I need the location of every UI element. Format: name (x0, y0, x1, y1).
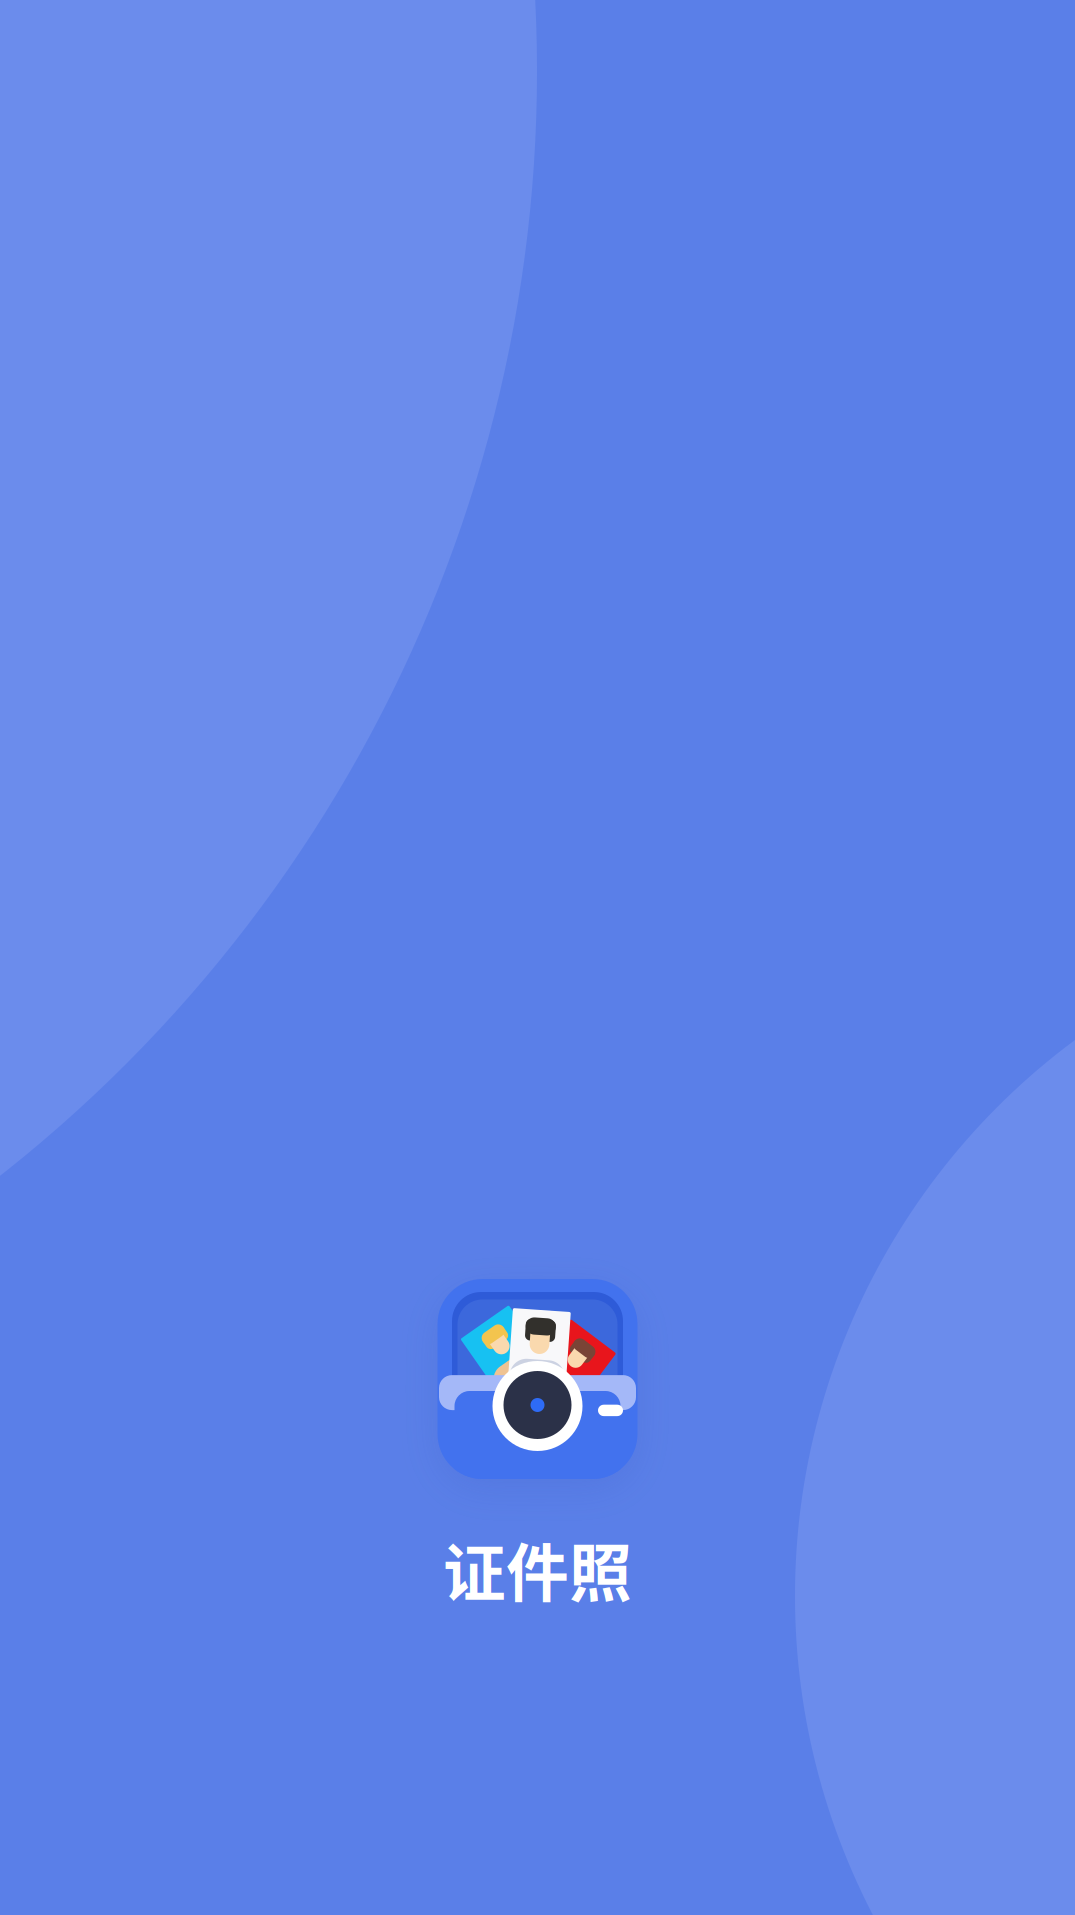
staticText: 证件照 (443, 1523, 632, 1614)
